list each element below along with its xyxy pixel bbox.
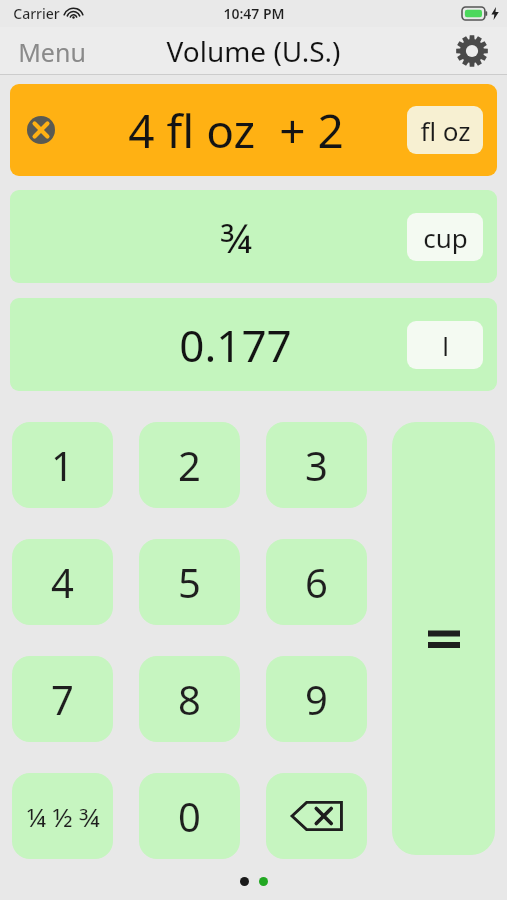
button[interactable]: 3 xyxy=(266,422,367,508)
staticText: 0.177 xyxy=(179,315,292,375)
button[interactable]: 1 xyxy=(12,422,113,508)
staticText: 0 xyxy=(178,789,201,843)
button[interactable]: Clear xyxy=(24,113,58,147)
staticText: 6 xyxy=(305,555,328,609)
button[interactable]: 9 xyxy=(266,656,367,742)
staticText: 4 fl oz + 2 xyxy=(128,99,344,162)
staticText: Menu xyxy=(18,35,86,66)
button[interactable]: Menu xyxy=(0,27,104,74)
staticText: ¾ xyxy=(220,210,252,264)
staticText: cup xyxy=(423,220,468,255)
button[interactable]: fl oz xyxy=(407,106,483,154)
staticText: 7 xyxy=(51,672,74,726)
button[interactable]: 0 xyxy=(139,773,240,859)
staticText: 1 xyxy=(51,438,74,492)
button[interactable]: cup xyxy=(407,213,483,261)
staticText: Carrier xyxy=(13,4,60,23)
button[interactable]: l xyxy=(407,321,483,369)
staticText: 5 xyxy=(178,555,201,609)
button[interactable]: 4 xyxy=(12,539,113,625)
button[interactable]: Backspace xyxy=(266,773,367,859)
button[interactable]: 6 xyxy=(266,539,367,625)
button[interactable]: Fractions xyxy=(12,773,113,859)
button[interactable]: 5 xyxy=(139,539,240,625)
staticText: ¼ ½ ¾ xyxy=(26,799,100,834)
button[interactable]: 7 xyxy=(12,656,113,742)
staticText: 2 xyxy=(178,438,201,492)
button[interactable]: Clear xyxy=(10,84,497,176)
staticText: fl oz xyxy=(420,113,471,148)
button[interactable]: Settings xyxy=(453,32,491,70)
button[interactable]: Equals xyxy=(392,422,495,855)
button[interactable]: 2 xyxy=(139,422,240,508)
button[interactable]: 8 xyxy=(139,656,240,742)
staticText: l xyxy=(442,328,449,363)
button[interactable]: 0.177 xyxy=(10,298,497,391)
staticText: 9 xyxy=(305,672,328,726)
staticText: 3 xyxy=(305,438,328,492)
staticText: 8 xyxy=(178,672,201,726)
staticText: 10:47 PM xyxy=(223,4,285,23)
staticText: Volume (U.S.) xyxy=(166,32,341,70)
staticText: 4 xyxy=(51,555,74,609)
button[interactable]: ¾ xyxy=(10,190,497,283)
